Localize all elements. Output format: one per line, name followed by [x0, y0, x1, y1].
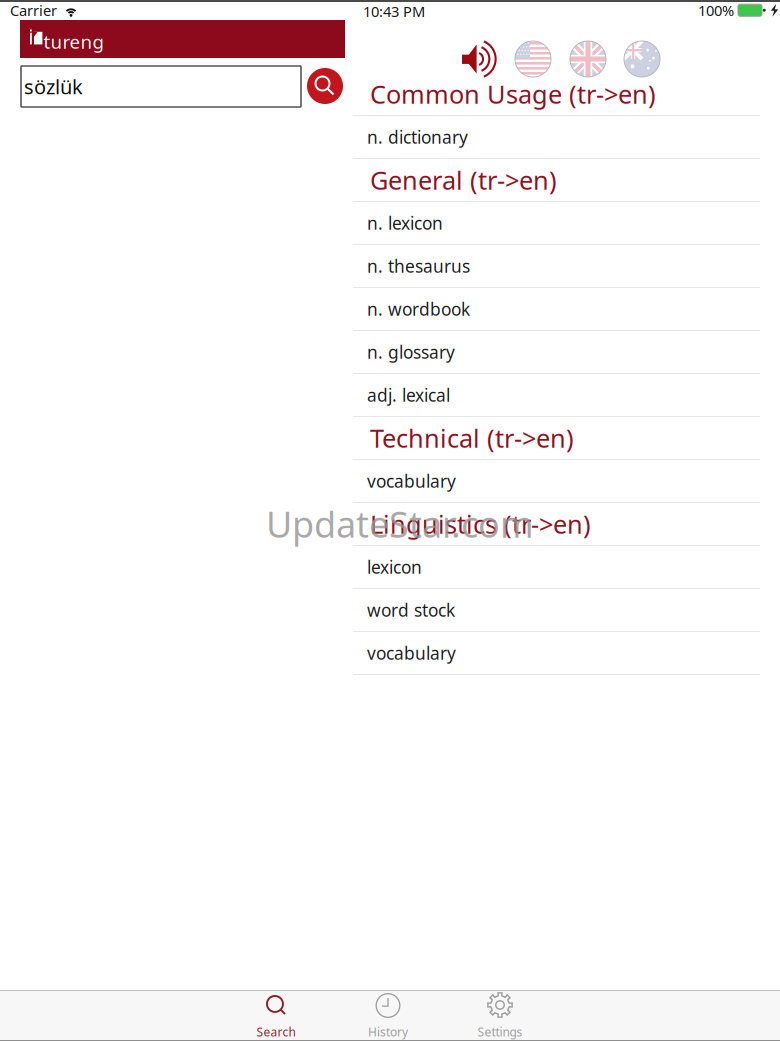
button[interactable]: lexicon: [353, 546, 760, 589]
button[interactable]: Search: [220, 991, 332, 1040]
staticText: sözlük: [24, 73, 83, 100]
button[interactable]: vocabulary: [353, 460, 760, 503]
button[interactable]: vocabulary: [353, 632, 760, 675]
staticText: Settings: [477, 1024, 522, 1040]
button[interactable]: American pronunciation: [515, 41, 551, 77]
button[interactable]: n. lexicon: [353, 202, 760, 245]
staticText: n. lexicon: [367, 211, 443, 234]
staticText: n. thesaurus: [367, 254, 470, 277]
staticText: UpdateStar.com: [266, 500, 534, 548]
staticText: General (tr->en): [370, 163, 557, 197]
staticText: History: [368, 1024, 408, 1040]
button[interactable]: adj. lexical: [353, 374, 760, 417]
staticText: lexicon: [367, 555, 422, 578]
button[interactable]: Australian pronunciation: [624, 41, 660, 77]
button[interactable]: Play pronunciation: [462, 43, 496, 74]
button[interactable]: n. glossary: [353, 331, 760, 374]
button[interactable]: word stock: [353, 589, 760, 632]
staticText: adj. lexical: [367, 383, 450, 406]
staticText: n. glossary: [367, 340, 455, 363]
staticText: n. dictionary: [367, 125, 468, 148]
staticText: vocabulary: [367, 641, 456, 664]
staticText: vocabulary: [367, 469, 456, 492]
staticText: n. wordbook: [367, 297, 470, 320]
staticText: Technical (tr->en): [370, 421, 574, 455]
button[interactable]: n. dictionary: [353, 116, 760, 159]
staticText: tureng: [44, 29, 104, 54]
button[interactable]: n. thesaurus: [353, 245, 760, 288]
button[interactable]: History: [332, 991, 444, 1040]
button[interactable]: n. wordbook: [353, 288, 760, 331]
button[interactable]: Settings: [444, 991, 556, 1040]
staticText: Carrier: [10, 0, 57, 20]
staticText: Common Usage (tr->en): [370, 77, 656, 111]
button[interactable]: British pronunciation: [570, 41, 606, 77]
staticText: 10:43 PM: [363, 1, 425, 21]
staticText: Linguistics (tr->en): [370, 507, 591, 541]
button[interactable]: Search: [307, 68, 343, 104]
staticText: 100%: [698, 0, 734, 20]
staticText: Search: [256, 1024, 295, 1040]
staticText: word stock: [367, 598, 455, 621]
